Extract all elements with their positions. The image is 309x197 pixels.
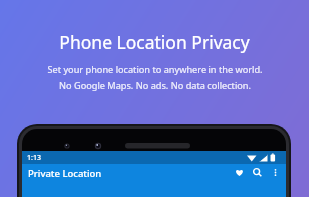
button[interactable]: More options bbox=[270, 167, 281, 178]
staticText: No Google Maps. No ads. No data collecti… bbox=[59, 79, 251, 92]
staticText: Private Location bbox=[28, 167, 102, 180]
staticText: Set your phone location to anywhere in t… bbox=[47, 63, 263, 76]
button[interactable]: Favorites bbox=[234, 167, 245, 178]
button[interactable]: Search bbox=[252, 167, 263, 178]
staticText: Phone Location Privacy bbox=[59, 30, 250, 54]
staticText: 1:13 bbox=[27, 153, 41, 163]
button[interactable]: Private Location bbox=[22, 164, 286, 197]
